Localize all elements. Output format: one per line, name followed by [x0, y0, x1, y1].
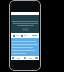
button[interactable]: [11, 15, 39, 33]
button[interactable]: [22, 28, 29, 31]
button[interactable]: [11, 38, 39, 56]
